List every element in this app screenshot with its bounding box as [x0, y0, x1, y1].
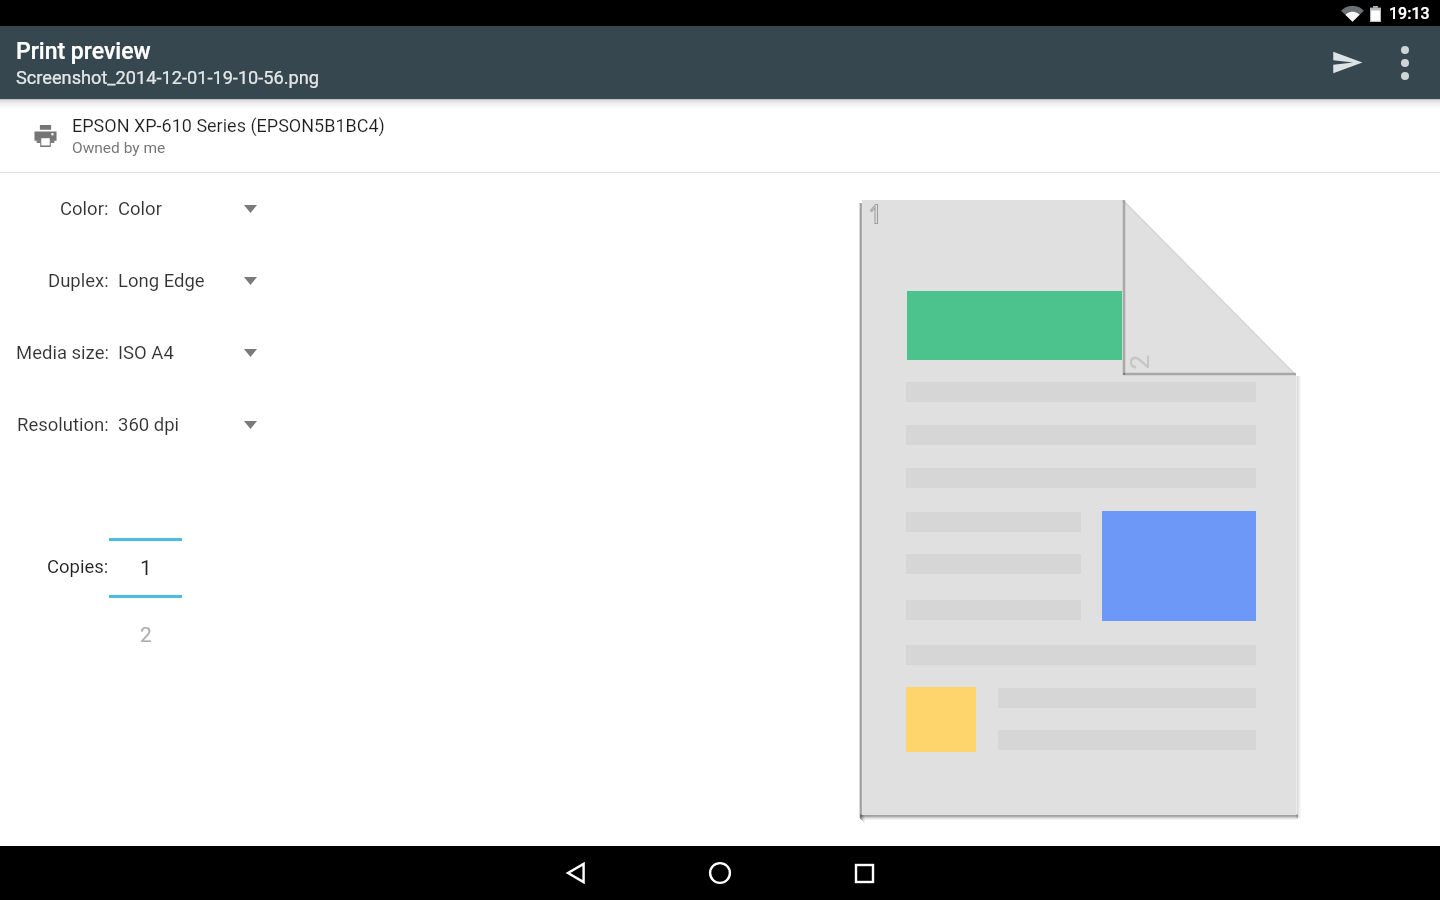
- button[interactable]: Number of copies: [109, 538, 182, 598]
- button[interactable]: Color:: [0, 173, 300, 245]
- button[interactable]: EPSON XP-610 Series (EPSON5B1BC4): [0, 99, 1440, 172]
- staticText: EPSON XP-610 Series (EPSON5B1BC4): [72, 115, 385, 136]
- button[interactable]: Media size:: [0, 317, 300, 389]
- staticText: 2: [1124, 354, 1150, 369]
- button[interactable]: More options: [1378, 26, 1432, 99]
- staticText: 19:13: [1389, 4, 1430, 23]
- staticText: Duplex:: [48, 270, 109, 292]
- button[interactable]: Resolution:: [0, 389, 300, 461]
- staticText: Screenshot_2014-12-01-19-10-56.png: [16, 67, 320, 88]
- staticText: Media size:: [16, 342, 109, 364]
- staticText: 360 dpi: [118, 414, 180, 436]
- button[interactable]: Duplex:: [0, 245, 300, 317]
- staticText: Owned by me: [72, 139, 166, 157]
- staticText: Long Edge: [118, 270, 205, 292]
- staticText: 1: [140, 556, 152, 581]
- staticText: Copies:: [47, 556, 109, 578]
- staticText: Print preview: [16, 38, 151, 65]
- staticText: Resolution:: [17, 414, 109, 436]
- button[interactable]: Home: [648, 846, 792, 900]
- staticText: Color: [118, 198, 162, 220]
- button[interactable]: Print: [1316, 26, 1378, 99]
- staticText: Color:: [60, 198, 109, 220]
- staticText: ISO A4: [118, 342, 174, 364]
- button[interactable]: Recent apps: [792, 846, 936, 900]
- staticText: 2: [140, 623, 152, 648]
- button[interactable]: Back: [504, 846, 648, 900]
